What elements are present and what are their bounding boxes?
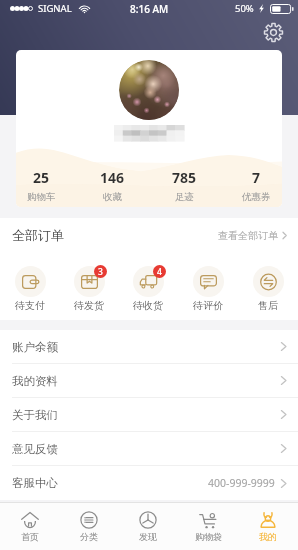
button[interactable]: 关于我们 (0, 398, 298, 432)
button[interactable]: 146 (77, 168, 148, 203)
staticText: 7 (252, 168, 261, 187)
staticText: 待支付 (15, 299, 45, 312)
button[interactable]: 首页 (0, 503, 59, 550)
button[interactable]: 我的资料 (0, 364, 298, 398)
staticText: 待发货 (74, 299, 104, 312)
button[interactable]: 售后 (238, 256, 298, 312)
button[interactable]: 待评价 (178, 256, 238, 312)
staticText: 购物车 (27, 191, 56, 203)
staticText: 785 (172, 168, 197, 187)
staticText: 25 (33, 168, 50, 187)
staticText: 账户余额 (12, 340, 58, 354)
button[interactable]: 785 (148, 168, 220, 203)
staticText: 146 (100, 168, 125, 187)
staticText: SIGNAL (38, 2, 72, 15)
staticText: 我的 (259, 531, 277, 542)
staticText: 意见反馈 (12, 442, 58, 456)
button[interactable]: 待支付 (0, 256, 59, 312)
staticText: 4 (157, 266, 162, 278)
staticText: 待收货 (133, 299, 163, 312)
button[interactable]: 账户余额 (0, 330, 298, 364)
staticText: 3 (98, 266, 103, 278)
button[interactable]: Settings (264, 23, 283, 42)
button[interactable]: 意见反馈 (0, 432, 298, 466)
staticText: 查看全部订单 (218, 229, 278, 242)
button[interactable]: 7 (220, 168, 282, 203)
button[interactable]: 客服中心 (0, 466, 298, 500)
button[interactable]: 分类 (59, 503, 118, 550)
button[interactable]: 发现 (118, 503, 178, 550)
staticText: 全部订单 (12, 227, 64, 243)
staticText: 50% (235, 2, 254, 15)
button[interactable]: 购物袋 (178, 503, 238, 550)
staticText: 首页 (21, 531, 39, 542)
staticText: 足迹 (175, 191, 194, 203)
button[interactable]: 4 (118, 256, 178, 312)
staticText: 400-999-9999 (208, 476, 275, 490)
staticText: 我的资料 (12, 374, 58, 388)
staticText: 客服中心 (12, 476, 58, 490)
button[interactable]: 3 (59, 256, 118, 312)
staticText: 购物袋 (195, 531, 222, 542)
staticText: 发现 (139, 531, 157, 542)
staticText: 分类 (80, 531, 98, 542)
staticText: 收藏 (103, 191, 122, 203)
button[interactable]: 全部订单 (0, 218, 298, 252)
staticText: 售后 (258, 299, 278, 312)
staticText: 待评价 (193, 299, 223, 312)
staticText: 关于我们 (12, 408, 58, 422)
button[interactable]: 我的 (238, 503, 298, 550)
staticText: 8:16 AM (130, 2, 169, 16)
button[interactable]: Profile avatar (119, 60, 179, 120)
staticText: 优惠券 (242, 191, 271, 203)
button[interactable]: 25 (16, 168, 77, 203)
